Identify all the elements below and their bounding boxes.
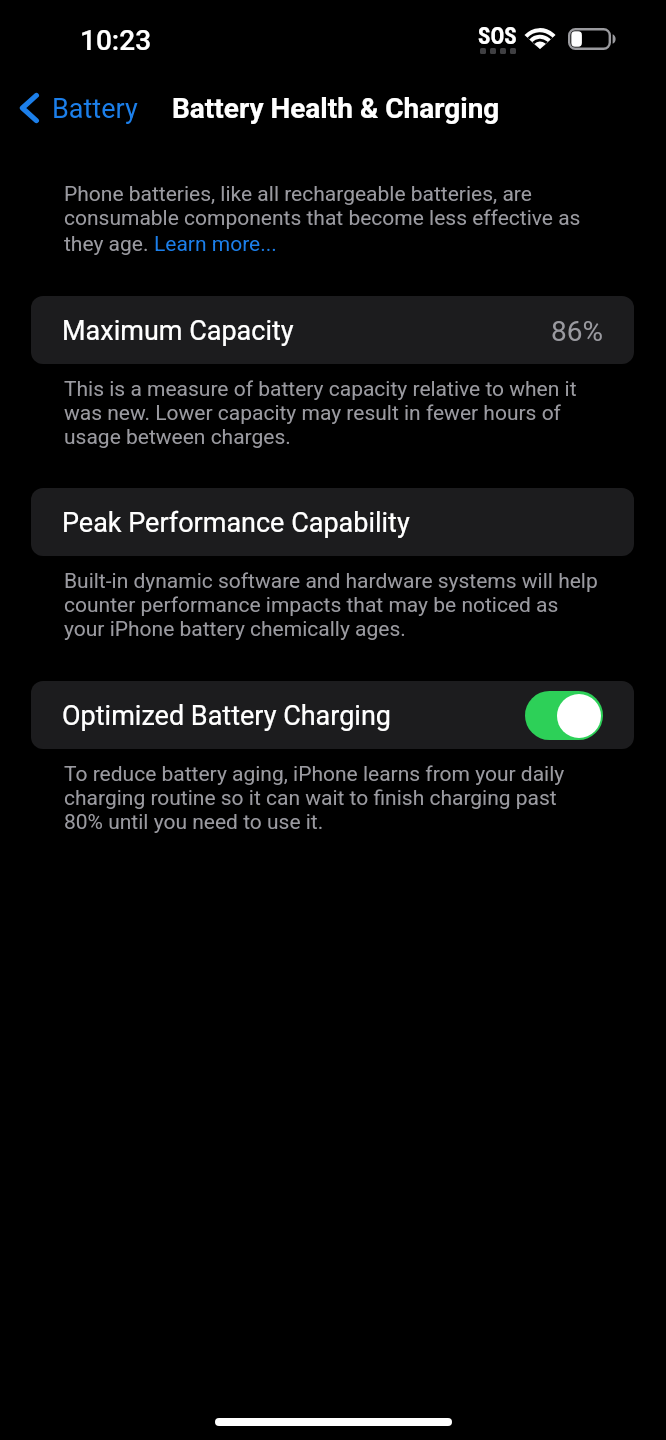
button[interactable]: Learn more... bbox=[154, 232, 277, 256]
staticText: Optimized Battery Charging bbox=[62, 700, 391, 732]
staticText: Learn more... bbox=[154, 232, 277, 256]
button[interactable]: Optimized Battery Charging toggle bbox=[525, 691, 603, 740]
staticText: Built-in dynamic software and hardware s… bbox=[64, 569, 600, 641]
button[interactable]: Maximum Capacity bbox=[31, 296, 634, 364]
staticText: 86% bbox=[551, 315, 603, 348]
staticText: This is a measure of battery capacity re… bbox=[64, 377, 600, 449]
staticText: 10:23 bbox=[80, 24, 152, 57]
staticText: Maximum Capacity bbox=[62, 315, 294, 347]
staticText: Battery bbox=[52, 93, 138, 125]
staticText: they age. bbox=[64, 232, 154, 256]
staticText: To reduce battery aging, iPhone learns f… bbox=[64, 762, 600, 834]
staticText: Battery Health & Charging bbox=[172, 92, 500, 125]
staticText: SOS bbox=[478, 23, 517, 50]
staticText: Peak Performance Capability bbox=[62, 507, 410, 539]
button[interactable]: Back to Battery bbox=[14, 84, 146, 132]
button[interactable]: Optimized Battery Charging bbox=[31, 681, 634, 749]
staticText: Phone batteries, like all rechargeable b… bbox=[64, 182, 600, 230]
button[interactable]: Peak Performance Capability bbox=[31, 488, 634, 556]
